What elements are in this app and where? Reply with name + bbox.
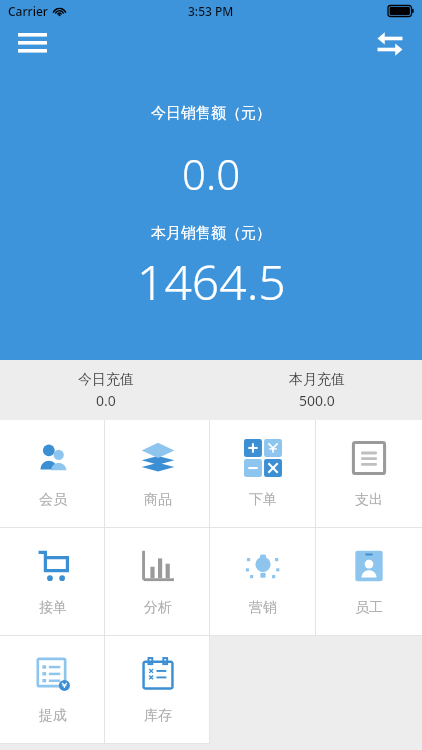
staticText: 员工 xyxy=(355,599,383,617)
staticText: 0.0 xyxy=(96,391,116,410)
staticText: 支出 xyxy=(355,491,383,509)
staticText: 接单 xyxy=(39,599,67,617)
staticText: 下单 xyxy=(249,491,277,509)
staticText: 今日销售额（元） xyxy=(151,104,271,123)
button[interactable]: 提成 xyxy=(0,636,105,744)
staticText: 分析 xyxy=(144,599,172,617)
button[interactable]: 本月充值 xyxy=(211,360,422,420)
staticText: 500.0 xyxy=(299,391,335,410)
button[interactable]: Menu xyxy=(10,22,56,68)
staticText: 1464.5 xyxy=(137,249,286,314)
staticText: 本月充值 xyxy=(289,371,345,389)
button[interactable]: 下单 xyxy=(210,420,316,528)
staticText: 会员 xyxy=(39,491,67,509)
staticText: 库存 xyxy=(144,707,172,725)
staticText: 提成 xyxy=(39,707,67,725)
button[interactable]: 库存 xyxy=(105,636,210,744)
staticText: 营销 xyxy=(249,599,277,617)
button[interactable]: 商品 xyxy=(105,420,210,528)
staticText: 3:53 PM xyxy=(188,3,234,19)
button[interactable]: 接单 xyxy=(0,528,105,636)
staticText: Carrier xyxy=(8,3,48,19)
staticText: 0.0 xyxy=(182,145,241,202)
button[interactable]: 今日充值 xyxy=(0,360,211,420)
button[interactable]: 员工 xyxy=(316,528,422,636)
staticText: 本月销售额（元） xyxy=(151,224,271,243)
button[interactable]: 支出 xyxy=(316,420,422,528)
staticText: 今日充值 xyxy=(78,371,134,389)
button[interactable]: Switch store xyxy=(366,20,414,68)
button[interactable]: 会员 xyxy=(0,420,105,528)
button[interactable]: 营销 xyxy=(210,528,316,636)
button[interactable]: 分析 xyxy=(105,528,210,636)
staticText: 商品 xyxy=(144,491,172,509)
